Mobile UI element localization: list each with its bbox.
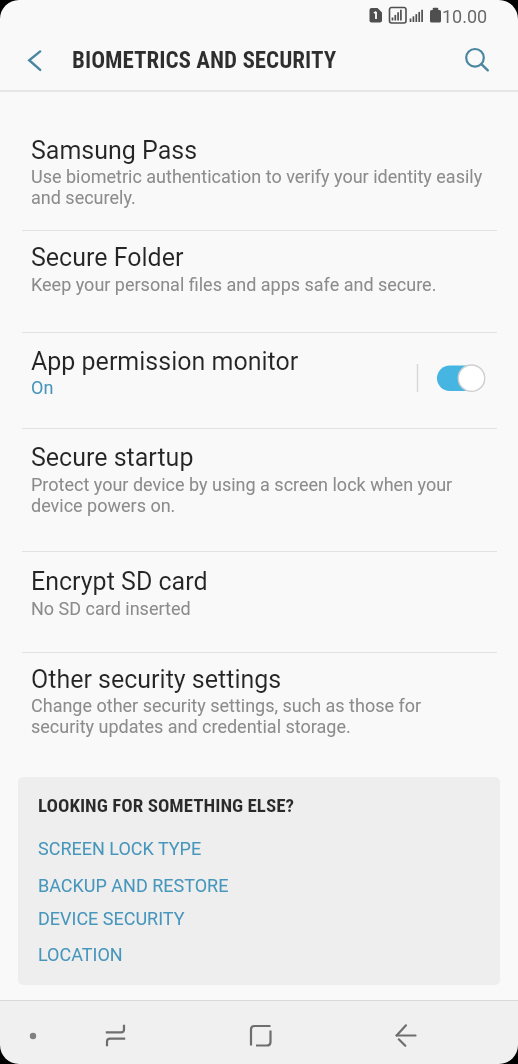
- staticText: Other security settings: [31, 665, 282, 694]
- staticText: BACKUP AND RESTORE: [38, 875, 229, 896]
- button[interactable]: [96, 1016, 136, 1056]
- staticText: Samsung Pass: [31, 136, 198, 165]
- button[interactable]: [240, 1016, 280, 1056]
- button[interactable]: Encrypt SD card: [0, 552, 518, 652]
- button[interactable]: Samsung Pass: [0, 92, 518, 230]
- staticText: 10.00: [442, 6, 488, 27]
- button[interactable]: SCREEN LOCK TYPE: [18, 831, 500, 865]
- staticText: Secure startup: [31, 443, 194, 472]
- button[interactable]: App permission monitor: [0, 333, 518, 428]
- staticText: Encrypt SD card: [31, 567, 208, 596]
- staticText: Protect your device by using a screen lo…: [31, 474, 453, 516]
- button[interactable]: LOCATION: [18, 937, 500, 971]
- staticText: App permission monitor: [31, 347, 299, 376]
- staticText: Keep your personal files and apps safe a…: [31, 274, 437, 295]
- staticText: Secure Folder: [31, 243, 184, 272]
- staticText: Use biometric authentication to verify y…: [31, 166, 483, 208]
- button[interactable]: Secure startup: [0, 429, 518, 551]
- staticText: No SD card inserted: [31, 598, 191, 619]
- staticText: SCREEN LOCK TYPE: [38, 838, 202, 859]
- staticText: LOCATION: [38, 944, 123, 965]
- button[interactable]: [430, 358, 492, 400]
- staticText: On: [31, 377, 54, 398]
- button[interactable]: Other security settings: [0, 653, 518, 777]
- button[interactable]: [18, 1020, 48, 1050]
- button[interactable]: DEVICE SECURITY: [18, 901, 500, 935]
- staticText: Change other security settings, such as …: [31, 695, 422, 737]
- button[interactable]: Secure Folder: [0, 231, 518, 332]
- button[interactable]: [456, 40, 494, 78]
- staticText: DEVICE SECURITY: [38, 908, 185, 929]
- button[interactable]: [386, 1016, 426, 1056]
- button[interactable]: BACKUP AND RESTORE: [18, 868, 500, 902]
- staticText: BIOMETRICS AND SECURITY: [72, 47, 337, 74]
- button[interactable]: [17, 42, 53, 78]
- staticText: LOOKING FOR SOMETHING ELSE?: [38, 794, 295, 816]
